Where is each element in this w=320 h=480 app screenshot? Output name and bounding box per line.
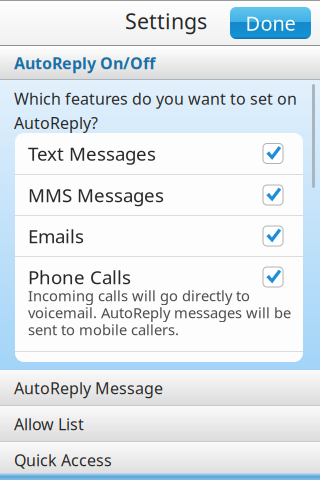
staticText: Which features do you want to set on	[14, 88, 297, 109]
staticText: Incoming calls will go directly to	[28, 286, 250, 305]
staticText: MMS Messages	[28, 183, 164, 207]
staticText: voicemail. AutoReply messages will be	[28, 303, 291, 322]
button[interactable]: Emails	[15, 216, 303, 256]
staticText: Emails	[28, 224, 84, 248]
staticText: AutoReply?	[14, 112, 98, 133]
staticText: AutoReply Message	[14, 377, 163, 399]
staticText: Quick Access	[14, 449, 112, 471]
staticText: Done	[245, 10, 295, 36]
button[interactable]: Allow List	[0, 406, 320, 442]
staticText: Settings	[125, 7, 207, 35]
button[interactable]: MMS Messages	[15, 175, 303, 215]
staticText: AutoReply On/Off	[14, 52, 155, 74]
button[interactable]: Quick Access	[0, 442, 320, 478]
button[interactable]: AutoReply Message	[0, 370, 320, 406]
button[interactable]: Phone Calls	[15, 257, 303, 351]
staticText: Phone Calls	[28, 265, 131, 289]
staticText: Text Messages	[28, 141, 156, 166]
button[interactable]: Text Messages	[15, 133, 303, 174]
staticText: sent to mobile callers.	[28, 320, 179, 339]
button[interactable]: Done	[230, 7, 311, 39]
staticText: Allow List	[14, 413, 84, 435]
